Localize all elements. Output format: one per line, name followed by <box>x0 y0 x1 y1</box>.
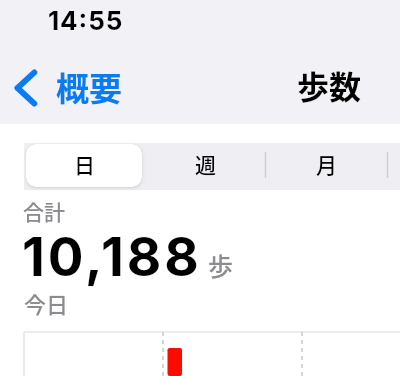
staticText: 10,188 <box>22 225 202 289</box>
button[interactable]: 月 <box>265 144 387 187</box>
staticText: 14:55 <box>48 5 124 36</box>
button[interactable]: 戻る <box>6 64 130 112</box>
staticText: 歩数 <box>297 62 362 108</box>
staticText: 月 <box>316 149 337 179</box>
staticText: 合計 <box>23 196 65 226</box>
staticText: 歩 <box>208 247 234 283</box>
staticText: 今日 <box>24 287 69 319</box>
staticText: 概要 <box>56 63 122 111</box>
button[interactable]: 日 <box>26 144 142 187</box>
staticText: 週 <box>195 149 216 179</box>
other: 戻る <box>10 66 39 110</box>
staticText: 日 <box>74 149 95 179</box>
button[interactable]: 週 <box>144 144 266 187</box>
